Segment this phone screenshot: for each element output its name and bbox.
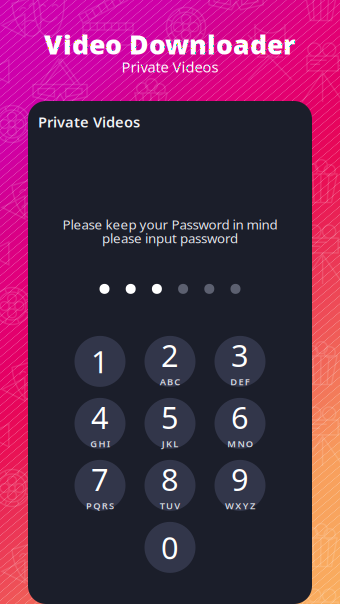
staticText: 5 bbox=[161, 397, 179, 437]
button[interactable]: 6 bbox=[214, 398, 265, 449]
staticText: 1 bbox=[91, 341, 109, 382]
button[interactable]: 8 bbox=[144, 460, 195, 511]
button[interactable]: 5 bbox=[144, 398, 195, 449]
staticText: WXYZ bbox=[225, 500, 255, 512]
staticText: 0 bbox=[161, 527, 179, 568]
button[interactable]: 1 bbox=[74, 336, 125, 387]
button[interactable]: 0 bbox=[144, 522, 195, 573]
staticText: DEF bbox=[230, 376, 250, 388]
staticText: GHI bbox=[90, 438, 110, 450]
staticText: 8 bbox=[161, 459, 179, 499]
staticText: JKL bbox=[162, 438, 178, 450]
staticText: Private Videos bbox=[121, 57, 218, 76]
staticText: please input password bbox=[102, 229, 238, 247]
staticText: PQRS bbox=[86, 500, 114, 512]
button[interactable]: 3 bbox=[214, 336, 265, 387]
button[interactable]: 2 bbox=[144, 336, 195, 387]
button[interactable]: 4 bbox=[74, 398, 125, 449]
button[interactable]: 9 bbox=[214, 460, 265, 511]
staticText: 6 bbox=[231, 397, 249, 437]
staticText: Please keep your Password in mind bbox=[62, 215, 277, 233]
staticText: 9 bbox=[231, 459, 249, 499]
staticText: Video Downloader bbox=[44, 27, 296, 62]
staticText: TUV bbox=[160, 500, 180, 512]
staticText: 2 bbox=[161, 335, 179, 375]
staticText: MNO bbox=[227, 438, 253, 450]
staticText: 7 bbox=[91, 459, 109, 499]
staticText: Private Videos bbox=[38, 112, 140, 131]
staticText: ABC bbox=[160, 376, 180, 388]
staticText: 3 bbox=[231, 335, 249, 375]
button[interactable]: 7 bbox=[74, 460, 125, 511]
staticText: 4 bbox=[91, 397, 109, 437]
